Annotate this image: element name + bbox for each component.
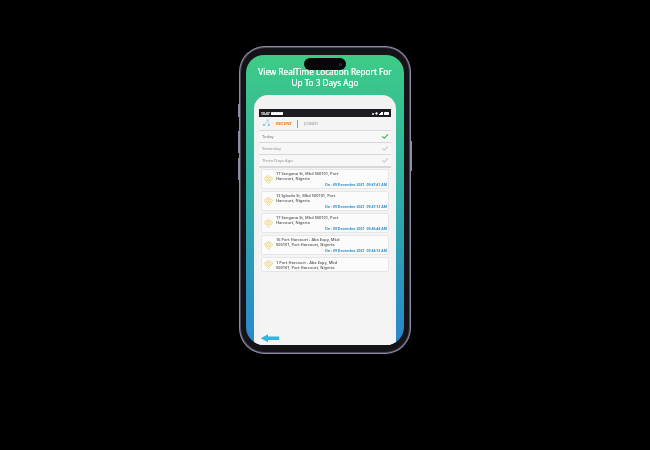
button[interactable]: Today — [259, 131, 391, 142]
button[interactable]: 13 Igbodo St, Mkd 500101, Port — [261, 191, 389, 211]
button[interactable]: RECENT — [274, 120, 294, 128]
staticText: 10:47 — [261, 111, 270, 116]
staticText: View RealTime Location Report For Up To … — [251, 66, 399, 88]
staticText: Harcourt, Nigeria — [276, 198, 310, 203]
staticText: 17 Sangana St, Mkd 500101, Port — [276, 171, 339, 176]
button[interactable]: 1 Port Harcourt - Aba Expy, Mkd — [261, 257, 389, 272]
staticText: On : 09 December 2021 09:47:41 AM — [276, 182, 387, 187]
staticText: 500101, Port Harcourt, Nigeria — [276, 265, 335, 270]
staticText: JOINED — [304, 121, 319, 127]
button[interactable]: Back — [260, 332, 280, 344]
staticText: 1 Port Harcourt - Aba Expy, Mkd — [276, 260, 338, 265]
staticText: Three Days Ago — [262, 158, 293, 164]
staticText: On : 09 December 2021 09:44:12 AM — [276, 248, 387, 253]
button[interactable]: Yesterday — [259, 143, 391, 154]
staticText: Harcourt, Nigeria — [276, 176, 310, 181]
staticText: 500101, Port Harcourt, Nigeria — [276, 242, 335, 247]
staticText: 13 Igbodo St, Mkd 500101, Port — [276, 193, 336, 198]
button[interactable]: App logo — [262, 119, 271, 128]
staticText: On : 09 December 2021 09:46:44 AM — [276, 226, 387, 231]
staticText: On : 09 December 2021 09:47:13 AM — [276, 204, 387, 209]
staticText: Today — [262, 134, 274, 140]
button[interactable]: JOINED — [302, 120, 321, 128]
staticText: 17 Sangana St, Mkd 500101, Port — [276, 215, 339, 220]
button[interactable]: 17 Sangana St, Mkd 500101, Port — [261, 213, 389, 233]
button[interactable]: Three Days Ago — [259, 155, 391, 166]
staticText: 16 Port Harcourt - Aba Expy, Mkd — [276, 237, 340, 242]
button[interactable]: 16 Port Harcourt - Aba Expy, Mkd — [261, 235, 389, 255]
staticText: RECENT — [276, 121, 292, 127]
button[interactable]: 17 Sangana St, Mkd 500101, Port — [261, 169, 389, 189]
staticText: Harcourt, Nigeria — [276, 220, 310, 225]
staticText: Yesterday — [262, 146, 282, 152]
